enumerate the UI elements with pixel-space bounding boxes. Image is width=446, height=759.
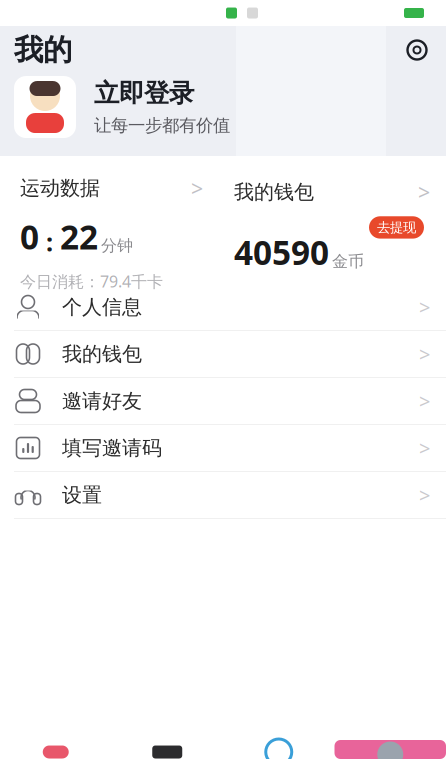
staticText: 金币 [332, 252, 364, 271]
button[interactable]: 我的 [334, 735, 446, 759]
staticText: 去提现 [377, 219, 416, 236]
staticText: 让每一步都有价值 [94, 115, 230, 136]
staticText: 设置 [62, 483, 102, 507]
staticText: 0 [20, 214, 39, 259]
button[interactable]: 填写邀请码 [0, 425, 446, 472]
staticText: > [419, 482, 430, 508]
staticText: > [419, 435, 430, 461]
button[interactable]: 我的钱包 [0, 331, 446, 378]
button[interactable]: 活动 [223, 729, 334, 759]
staticText: > [419, 341, 430, 367]
staticText: 运动数据 [20, 176, 100, 200]
staticText: > [418, 178, 430, 206]
staticText: 我的钱包 [62, 342, 142, 366]
staticText: 22 [60, 214, 98, 259]
staticText: : [39, 225, 60, 259]
staticText: 我的钱包 [234, 180, 314, 204]
button[interactable]: 设置 [0, 472, 446, 519]
staticText: 今日消耗：79.4千卡 [20, 271, 163, 292]
button[interactable]: 设置 [400, 33, 434, 67]
staticText: 个人信息 [62, 295, 142, 319]
button[interactable]: 商城 [111, 735, 223, 759]
staticText: 分钟 [101, 236, 133, 256]
staticText: > [191, 174, 203, 202]
staticText: 立即登录 [94, 78, 194, 109]
staticText: 邀请好友 [62, 389, 142, 413]
staticText: > [419, 294, 430, 320]
button[interactable]: 邀请好友 [0, 378, 446, 425]
button[interactable]: 立即登录 [0, 76, 446, 138]
button[interactable]: 运动 [0, 735, 111, 759]
staticText: 40590 [234, 230, 329, 274]
button[interactable]: 我的钱包 [223, 178, 446, 288]
button[interactable]: 个人信息 [0, 284, 446, 331]
staticText: > [419, 388, 430, 414]
staticText: 填写邀请码 [62, 436, 162, 460]
button[interactable]: 运动数据 [0, 174, 223, 292]
staticText: 我的 [14, 32, 72, 68]
